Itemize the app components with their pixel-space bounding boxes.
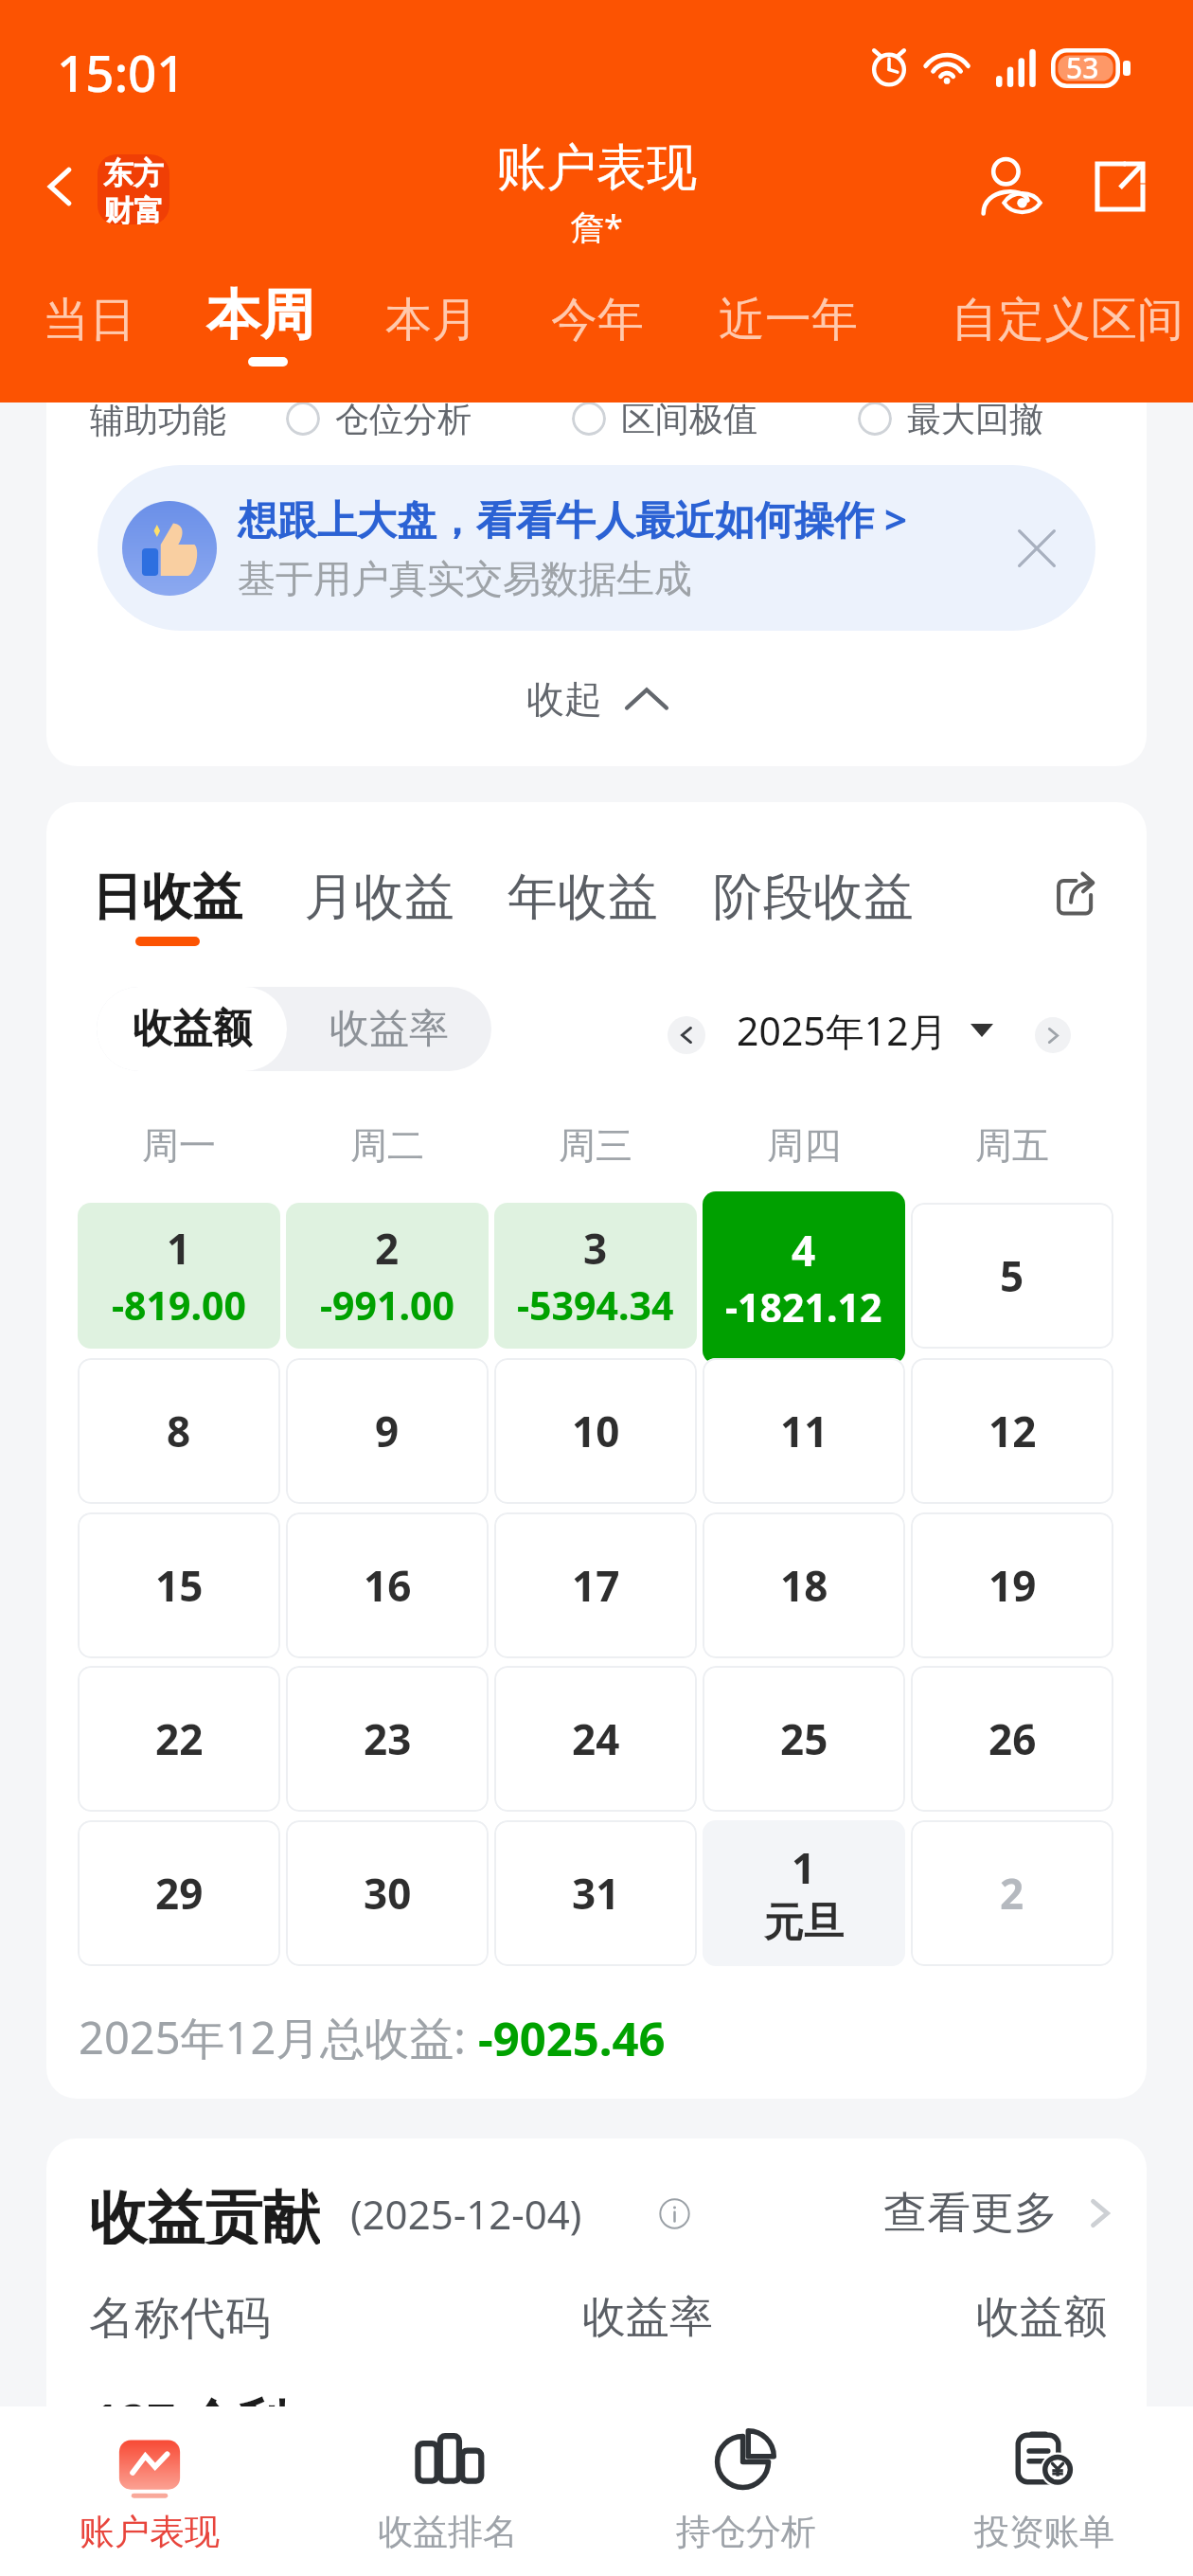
button[interactable]: 自定义区间 (935, 291, 1193, 376)
button[interactable]: Back (23, 150, 97, 224)
staticText: 12 (988, 1403, 1037, 1459)
staticText: 30 (364, 1865, 412, 1922)
button[interactable]: East Money (98, 154, 169, 224)
staticText: 账户表现 (496, 136, 697, 200)
button[interactable]: 17 (494, 1512, 697, 1658)
button[interactable]: Share (1077, 144, 1163, 229)
staticText: 周三 (559, 1122, 632, 1169)
button[interactable]: 3 (494, 1203, 697, 1349)
staticText: 1 (167, 1220, 191, 1277)
button[interactable]: 收起 (46, 631, 1147, 766)
button[interactable]: 5 (911, 1203, 1113, 1349)
button[interactable]: 11 (703, 1358, 905, 1504)
staticText: 东方 (103, 154, 164, 192)
staticText: -1821.12 (725, 1280, 882, 1333)
staticText: 25 (780, 1710, 828, 1767)
staticText: 账户表现 (80, 2510, 220, 2554)
button[interactable]: 24 (494, 1666, 697, 1812)
button[interactable]: 19 (911, 1512, 1113, 1658)
button[interactable]: 阶段收益 (713, 866, 914, 946)
button[interactable]: 15 (78, 1512, 280, 1658)
button[interactable]: 2025年12月 (737, 998, 993, 1063)
staticText: 26 (988, 1710, 1037, 1767)
button[interactable]: 日收益 (92, 866, 242, 946)
button[interactable]: 月收益 (304, 866, 454, 946)
button[interactable]: 26 (911, 1666, 1113, 1812)
button[interactable]: 收益排名 (298, 2406, 596, 2576)
staticText: 周四 (767, 1122, 841, 1169)
button[interactable]: 查看更多 (883, 2182, 1114, 2245)
button[interactable]: 收益率 (287, 987, 491, 1071)
button[interactable]: 18 (703, 1512, 905, 1658)
staticText: 9 (375, 1403, 400, 1459)
button[interactable]: Share chart (1042, 859, 1112, 929)
button[interactable]: Info (650, 2190, 698, 2237)
staticText: -9025.46 (478, 2007, 666, 2066)
staticText: -5394.34 (517, 1279, 674, 1332)
staticText: 收益贡献 (89, 2182, 320, 2245)
button[interactable]: 本月 (361, 291, 503, 376)
staticText: 127 金利 (91, 2387, 287, 2454)
button[interactable]: 近一年 (698, 291, 878, 376)
staticText: 基于用户真实交易数据生成 (238, 555, 692, 602)
button[interactable]: 4 (703, 1191, 905, 1364)
button[interactable]: Close (1003, 514, 1071, 582)
button[interactable]: 25 (703, 1666, 905, 1812)
button[interactable]: 12 (911, 1358, 1113, 1504)
button[interactable]: 2 (911, 1820, 1113, 1966)
staticText: 18 (780, 1557, 828, 1614)
staticText: 阶段收益 (713, 866, 914, 929)
staticText: 29 (155, 1865, 204, 1922)
staticText: 收益排名 (378, 2510, 518, 2554)
button[interactable]: 账户表现 (0, 2406, 298, 2576)
staticText: 24 (572, 1710, 620, 1767)
staticText: 本月 (385, 291, 478, 349)
button[interactable]: 9 (286, 1358, 489, 1504)
staticText: 2 (1000, 1865, 1024, 1922)
staticText: 查看更多 (883, 2186, 1058, 2241)
staticText: 2025年12月总收益: (79, 2007, 478, 2066)
button[interactable]: 想跟上大盘，看看牛人最近如何操作 > (98, 465, 1095, 631)
staticText: 收益率 (329, 1004, 449, 1054)
button[interactable]: 投资账单 (895, 2406, 1193, 2576)
button[interactable]: 1 (703, 1820, 905, 1966)
button[interactable]: 最大回撤 (858, 402, 1043, 442)
staticText: 19 (988, 1557, 1037, 1614)
staticText: 詹* (570, 204, 623, 250)
staticText: 仓位分析 (335, 402, 472, 440)
button[interactable]: 当日 (18, 291, 160, 376)
staticText: 15:01 (57, 38, 186, 106)
button[interactable]: 收益额 (97, 987, 287, 1071)
button[interactable]: 2 (286, 1203, 489, 1349)
staticText: 收益率 (582, 2290, 713, 2345)
button[interactable]: 16 (286, 1512, 489, 1658)
button[interactable]: Account (968, 144, 1053, 229)
staticText: (2025-12-04) (350, 2187, 582, 2241)
button[interactable]: 持仓分析 (596, 2406, 895, 2576)
button[interactable]: 区间极值 (572, 402, 757, 442)
button[interactable]: 23 (286, 1666, 489, 1812)
staticText: 收益额 (976, 2290, 1107, 2345)
staticText: 区间极值 (621, 402, 757, 440)
staticText: 持仓分析 (676, 2510, 816, 2554)
staticText: 8 (167, 1403, 191, 1459)
button[interactable]: 年收益 (507, 866, 658, 946)
button[interactable]: 22 (78, 1666, 280, 1812)
button[interactable]: 本周 (189, 281, 331, 376)
staticText: 周五 (975, 1122, 1049, 1169)
button[interactable]: 10 (494, 1358, 697, 1504)
staticText: 财富 (103, 192, 164, 224)
button[interactable]: Next month (1035, 1017, 1071, 1053)
button[interactable]: 仓位分析 (286, 402, 472, 442)
staticText: 3 (583, 1220, 608, 1277)
staticText: 2025年12月 (737, 1004, 948, 1057)
staticText: 53 (1066, 48, 1099, 87)
button[interactable]: Previous month (668, 1016, 705, 1054)
button[interactable]: 30 (286, 1820, 489, 1966)
button[interactable]: 今年 (526, 291, 668, 376)
button[interactable]: 31 (494, 1820, 697, 1966)
staticText: 想跟上大盘，看看牛人最近如何操作 > (238, 492, 907, 546)
button[interactable]: 29 (78, 1820, 280, 1966)
button[interactable]: 8 (78, 1358, 280, 1504)
button[interactable]: 1 (78, 1203, 280, 1349)
